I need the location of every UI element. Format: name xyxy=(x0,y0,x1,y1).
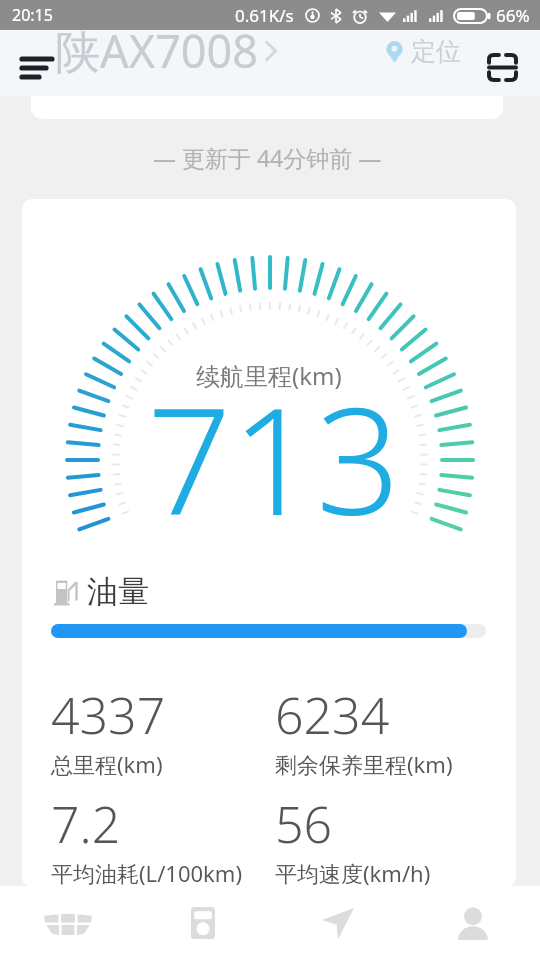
staticText: 平均油耗(L/100km) xyxy=(51,858,242,887)
button[interactable]: Device xyxy=(135,886,270,960)
staticText: 续航里程(km) xyxy=(196,359,342,392)
staticText: 66% xyxy=(496,4,530,27)
staticText: 油量 xyxy=(87,572,149,611)
staticText: 总里程(km) xyxy=(51,749,163,779)
staticText: 陕AX7008 xyxy=(55,20,259,81)
staticText: 0.61K/s xyxy=(235,4,294,27)
staticText: 6234 xyxy=(275,681,390,749)
button[interactable]: Menu xyxy=(8,35,64,91)
button[interactable]: 定位 xyxy=(382,32,465,71)
staticText: 56 xyxy=(275,790,333,858)
button[interactable]: Scan QR code xyxy=(478,43,526,91)
button[interactable]: Profile xyxy=(405,886,540,960)
staticText: 20:15 xyxy=(12,4,53,26)
button[interactable]: Navigate xyxy=(270,886,405,960)
staticText: 平均速度(km/h) xyxy=(275,858,431,887)
staticText: 713 xyxy=(147,357,401,559)
staticText: 4337 xyxy=(51,681,166,749)
button[interactable]: Vehicle xyxy=(0,886,135,960)
staticText: 7.2 xyxy=(51,790,121,858)
staticText: 剩余保养里程(km) xyxy=(275,749,453,779)
staticText: 定位 xyxy=(411,36,461,67)
staticText: — 更新于 44分钟前 — xyxy=(153,142,382,173)
